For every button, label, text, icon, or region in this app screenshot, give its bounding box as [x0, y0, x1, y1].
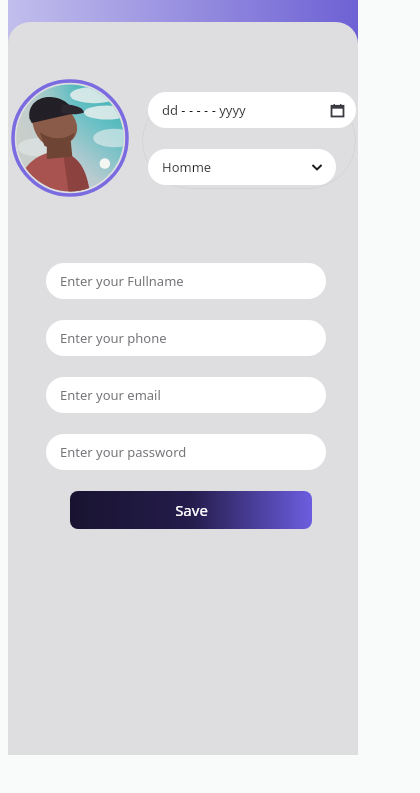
- button[interactable]: Enter your password: [46, 434, 326, 470]
- staticText: Enter your password: [60, 443, 187, 461]
- button[interactable]: dd - - - - - yyyy: [148, 92, 356, 128]
- button[interactable]: Profile photo: [12, 80, 128, 196]
- staticText: Homme: [162, 158, 212, 176]
- button[interactable]: Enter your email: [46, 377, 326, 413]
- button[interactable]: Gender selector: [148, 149, 336, 185]
- staticText: Enter your email: [60, 386, 161, 404]
- button[interactable]: Enter your Fullname: [46, 263, 326, 299]
- staticText: Enter your phone: [60, 329, 167, 347]
- staticText: Save: [175, 500, 208, 520]
- staticText: dd - - - - - yyyy: [162, 101, 246, 119]
- button[interactable]: Enter your phone: [46, 320, 326, 356]
- button[interactable]: Save: [70, 491, 312, 529]
- staticText: Enter your Fullname: [60, 272, 184, 290]
